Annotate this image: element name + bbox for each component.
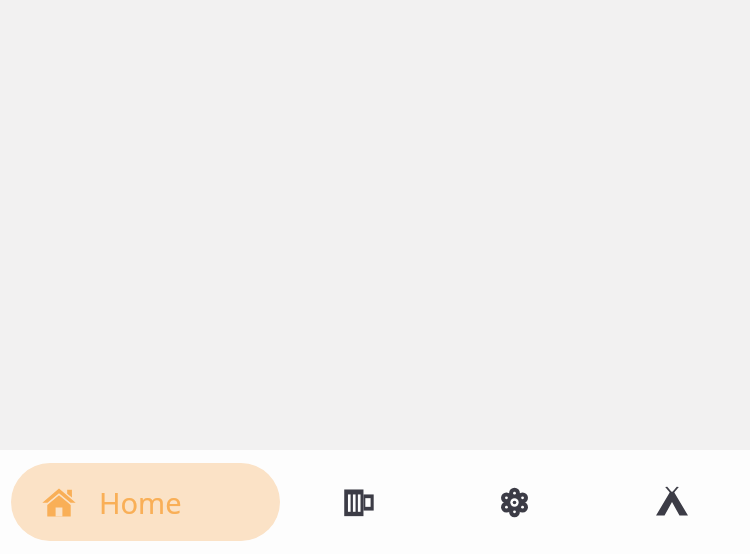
button[interactable]: Drinks [280, 450, 436, 554]
button[interactable]: Science [436, 450, 593, 554]
staticText: Home [99, 483, 182, 522]
button[interactable]: Home [11, 463, 280, 541]
button[interactable]: Camping [593, 450, 750, 554]
